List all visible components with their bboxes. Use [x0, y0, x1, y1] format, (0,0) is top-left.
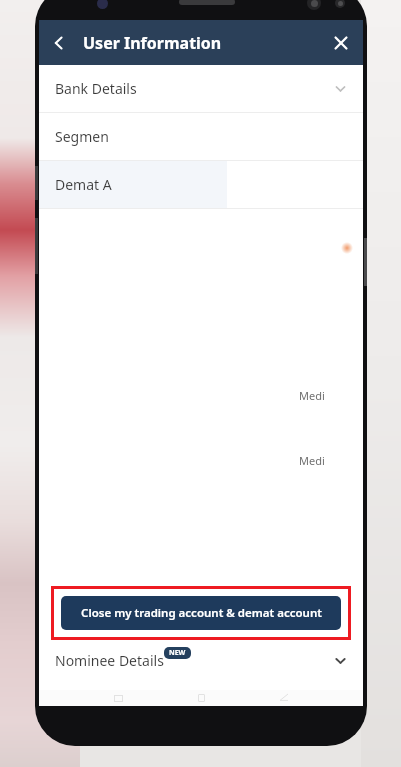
staticText: Medi — [299, 453, 325, 468]
staticText: Close my trading account & demat account — [81, 605, 322, 621]
staticText: Demat A — [55, 175, 112, 194]
staticText: Bank Details — [55, 79, 137, 98]
staticText: Nominee Details — [55, 651, 164, 670]
button[interactable]: Back — [39, 20, 79, 65]
button[interactable]: Close my trading account & demat account — [61, 596, 341, 630]
staticText: Segmen — [55, 127, 109, 146]
button[interactable]: Demat A — [39, 161, 363, 208]
button[interactable]: Bank Details — [39, 65, 363, 112]
button[interactable]: Close — [319, 20, 363, 65]
button[interactable]: Nominee Details — [39, 640, 363, 680]
button[interactable]: Segmen — [39, 113, 363, 160]
staticText: NEW — [169, 648, 186, 658]
staticText: Medi — [299, 388, 325, 403]
staticText: User Information — [83, 32, 222, 54]
